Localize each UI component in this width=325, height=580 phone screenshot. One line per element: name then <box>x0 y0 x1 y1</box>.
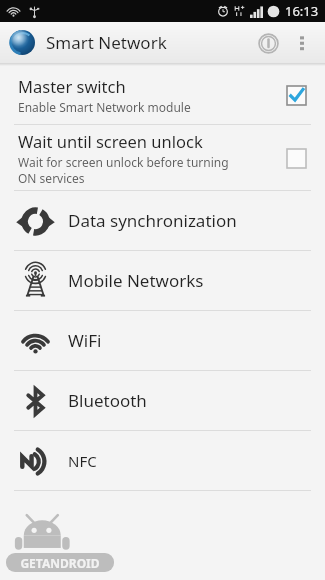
button[interactable]: More options <box>287 28 317 58</box>
staticText: Wait until screen unlock <box>18 130 203 152</box>
staticText: Bluetooth <box>68 389 147 412</box>
button[interactable]: Bluetooth <box>0 371 325 430</box>
staticText: Mobile Networks <box>68 269 204 292</box>
staticText: NFC <box>68 451 97 471</box>
button[interactable]: Master switch <box>0 66 325 124</box>
staticText: 16:13 <box>285 2 319 20</box>
staticText: WiFi <box>68 329 102 352</box>
button[interactable]: WiFi <box>0 311 325 370</box>
staticText: Enable Smart Network module <box>18 99 191 115</box>
button[interactable]: Info <box>251 26 285 60</box>
staticText: Data synchronization <box>68 209 237 232</box>
staticText: Smart Network <box>46 31 167 54</box>
staticText: Wait for screen unlock before turning ON… <box>18 154 229 186</box>
button[interactable]: Data synchronization <box>0 191 325 250</box>
button[interactable]: Wait until screen unlock <box>0 125 325 190</box>
staticText: Master switch <box>18 75 126 97</box>
button[interactable]: NFC <box>0 431 325 490</box>
staticText: GETANDROID <box>20 555 100 571</box>
button[interactable]: Mobile Networks <box>0 251 325 310</box>
